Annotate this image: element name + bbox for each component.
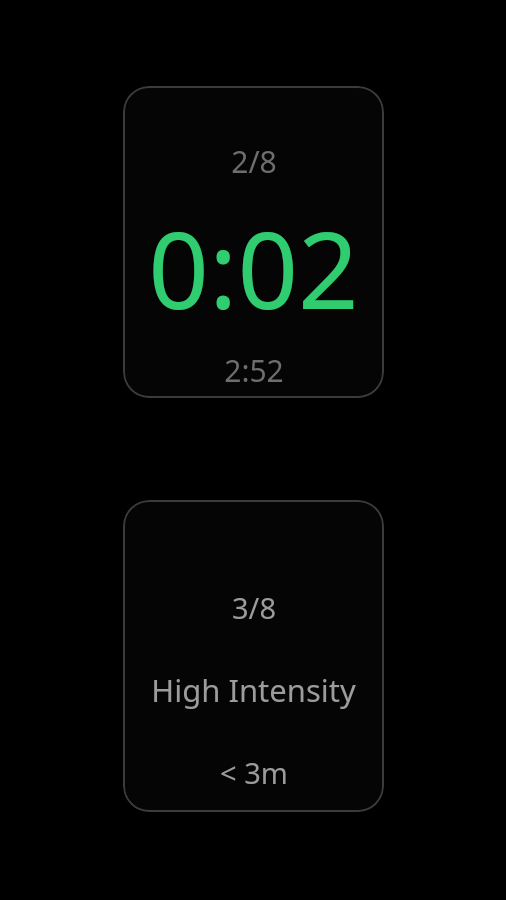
staticText: 0:02 <box>148 196 359 340</box>
staticText: 2/8 <box>231 141 277 182</box>
staticText: High Intensity <box>151 669 356 711</box>
staticText: 3/8 <box>232 588 276 627</box>
staticText: < 3m <box>220 753 288 792</box>
button[interactable]: 2/8 <box>123 86 384 398</box>
staticText: 2:52 <box>224 350 284 391</box>
button[interactable]: 3/8 <box>123 500 384 812</box>
